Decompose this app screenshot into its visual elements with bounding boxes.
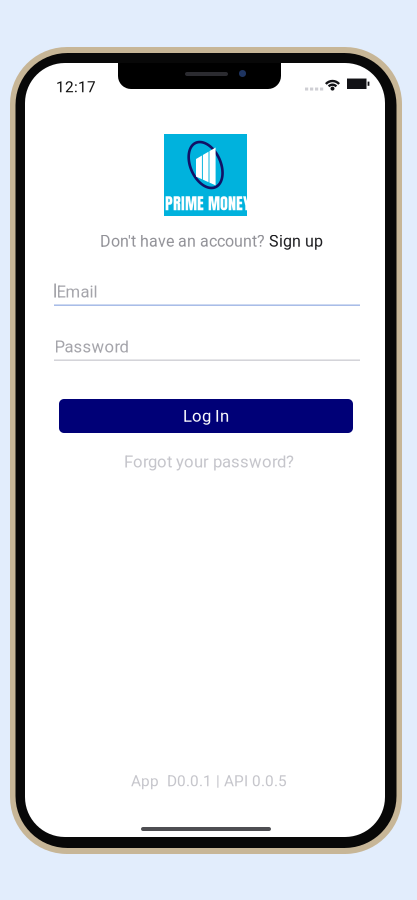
staticText: Password <box>55 337 129 356</box>
staticText: Log In <box>183 406 229 426</box>
staticText: 12:17 <box>56 78 96 96</box>
staticText: App D0.0.1 | API 0.0.5 <box>131 772 287 790</box>
staticText: PRIME MONEY <box>165 191 250 215</box>
staticText: Don't have an account? <box>100 232 265 251</box>
button[interactable]: Log In <box>59 399 353 433</box>
staticText: Sign up <box>269 232 323 251</box>
button[interactable]: Sign up <box>269 232 323 251</box>
staticText: Forgot your password? <box>124 452 294 471</box>
staticText: Email <box>57 282 98 301</box>
button[interactable]: Forgot your password? <box>124 452 294 471</box>
button[interactable]: Email <box>54 282 360 306</box>
button[interactable]: Password <box>54 337 360 361</box>
